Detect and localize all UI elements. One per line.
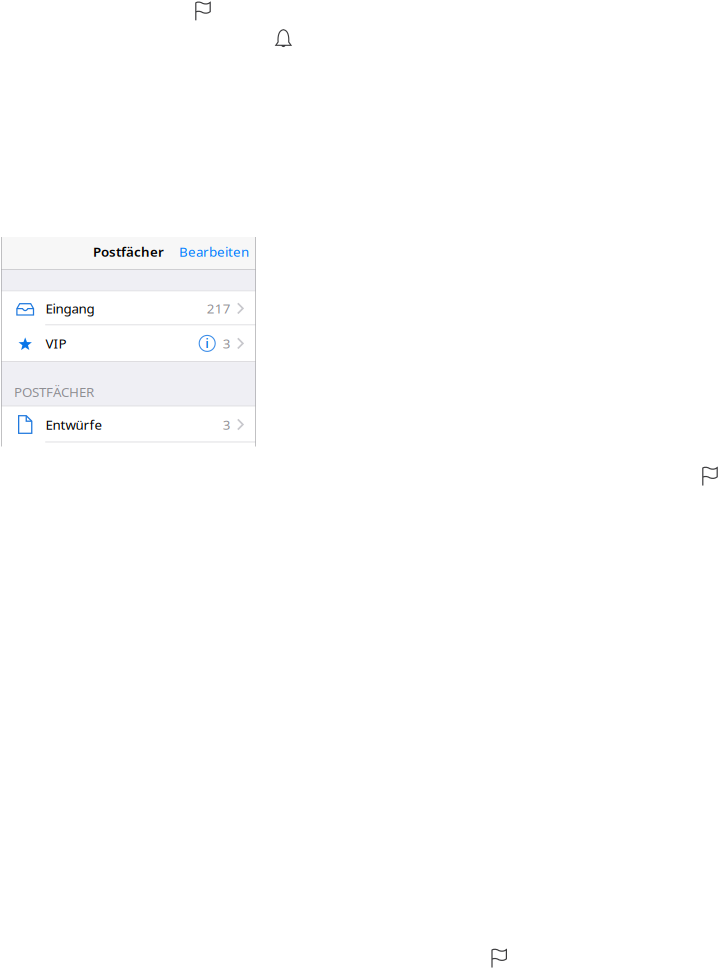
button[interactable]: Flag <box>702 467 718 486</box>
button[interactable]: Entwürfe <box>1 406 256 442</box>
staticText: i <box>205 334 209 352</box>
staticText: POSTFÄCHER <box>14 383 94 401</box>
button[interactable]: Flag <box>491 949 507 968</box>
staticText: Entwürfe <box>45 416 102 433</box>
staticText: 217 <box>207 299 231 317</box>
staticText: Bearbeiten <box>179 243 249 260</box>
staticText: VIP <box>45 334 66 352</box>
staticText: 3 <box>223 334 231 352</box>
staticText: Eingang <box>45 299 94 317</box>
button[interactable]: Bearbeiten <box>179 244 256 262</box>
button[interactable]: VIP <box>1 325 256 361</box>
button[interactable]: Eingang <box>1 291 256 325</box>
button[interactable]: Notifications <box>275 29 292 48</box>
staticText: Postfächer <box>93 243 164 260</box>
button[interactable]: Flag <box>195 2 211 21</box>
staticText: 3 <box>223 416 231 433</box>
